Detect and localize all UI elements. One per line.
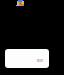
button[interactable]: [5, 49, 49, 68]
button[interactable]: App logo: [15, 0, 24, 6]
